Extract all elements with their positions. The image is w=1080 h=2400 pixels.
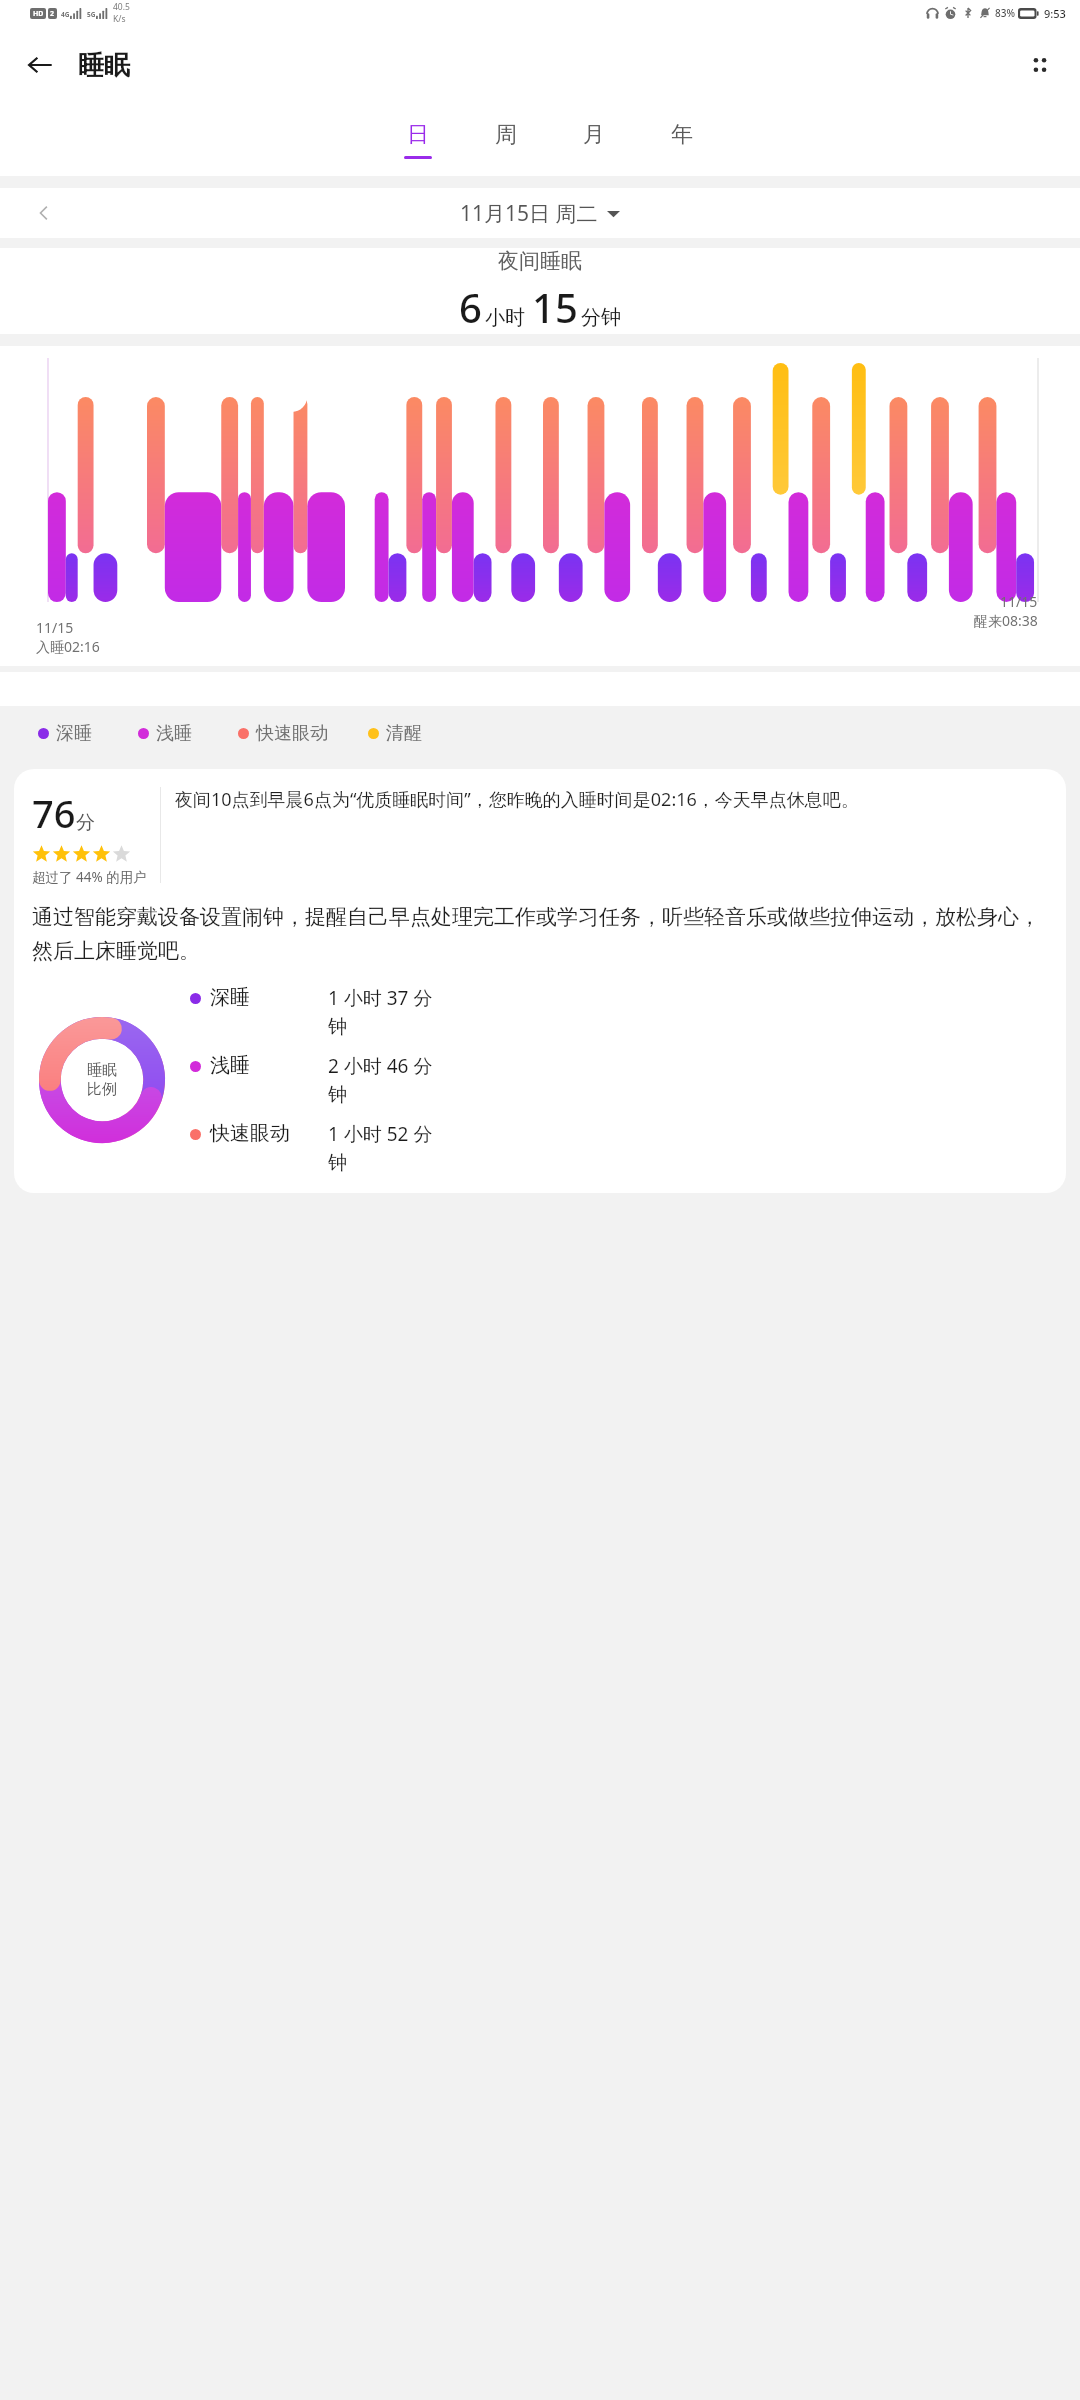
button[interactable]: 浅睡	[138, 722, 192, 745]
staticText: 超过了 44% 的用户	[32, 868, 147, 886]
staticText: 比例	[87, 1080, 117, 1099]
staticText: 11月15日 周二	[460, 199, 598, 228]
staticText: 月	[583, 121, 605, 149]
button[interactable]: 快速眼动	[190, 1121, 1048, 1175]
staticText: 83%	[995, 6, 1015, 20]
staticText: 睡眠	[87, 1061, 117, 1080]
staticText: 15	[532, 280, 578, 334]
staticText: 小时	[485, 305, 525, 330]
button[interactable]: Previous day	[24, 193, 64, 233]
staticText: K/s	[113, 13, 126, 25]
staticText: 分	[76, 811, 95, 835]
staticText: 1 小时 37 分 钟	[328, 985, 433, 1039]
staticText: 深睡	[210, 985, 322, 1010]
button[interactable]: 年	[638, 117, 726, 163]
button[interactable]: 深睡	[190, 985, 1048, 1039]
staticText: 浅睡	[210, 1053, 322, 1078]
staticText: 11/15	[36, 618, 74, 637]
staticText: 快速眼动	[256, 722, 328, 745]
button[interactable]: More options	[1016, 41, 1064, 89]
staticText: 11/15	[1000, 592, 1038, 611]
staticText: 醒来08:38	[974, 611, 1038, 630]
staticText: 5G	[87, 10, 96, 19]
button[interactable]: 浅睡	[190, 1053, 1048, 1107]
button[interactable]: 日	[374, 117, 462, 163]
button[interactable]: 11月15日 周二	[460, 199, 620, 228]
staticText: 4G	[61, 10, 70, 19]
staticText: 通过智能穿戴设备设置闹钟，提醒自己早点处理完工作或学习任务，听些轻音乐或做些拉伸…	[32, 904, 1048, 965]
button[interactable]: 76	[14, 769, 1066, 1193]
button[interactable]: 快速眼动	[238, 722, 328, 745]
staticText: 睡眠	[78, 49, 130, 82]
staticText: 2 小时 46 分 钟	[328, 1053, 433, 1107]
button[interactable]: Expand	[277, 382, 307, 412]
staticText: 快速眼动	[210, 1121, 322, 1146]
staticText: 分钟	[581, 305, 621, 330]
button[interactable]: 清醒	[368, 722, 422, 745]
staticText: 日	[407, 121, 429, 149]
staticText: 入睡02:16	[36, 637, 100, 656]
staticText: 夜间10点到早晨6点为“优质睡眠时间”，您昨晚的入睡时间是02:16，今天早点休…	[175, 787, 859, 812]
staticText: 夜间睡眠	[498, 248, 582, 274]
button[interactable]: 周	[462, 117, 550, 163]
staticText: HD	[33, 9, 44, 19]
staticText: 9:53	[1044, 6, 1066, 21]
staticText: 浅睡	[156, 722, 192, 745]
staticText: 年	[671, 121, 693, 149]
staticText: 76	[32, 787, 76, 839]
button[interactable]: 深睡	[38, 722, 92, 745]
staticText: 6	[459, 280, 482, 334]
staticText: 清醒	[386, 722, 422, 745]
button[interactable]: Back	[16, 41, 64, 89]
button[interactable]: 月	[550, 117, 638, 163]
staticText: 40.5	[113, 1, 130, 13]
staticText: 周	[495, 121, 517, 149]
staticText: 深睡	[56, 722, 92, 745]
staticText: 2	[50, 9, 55, 19]
staticText: 1 小时 52 分 钟	[328, 1121, 433, 1175]
